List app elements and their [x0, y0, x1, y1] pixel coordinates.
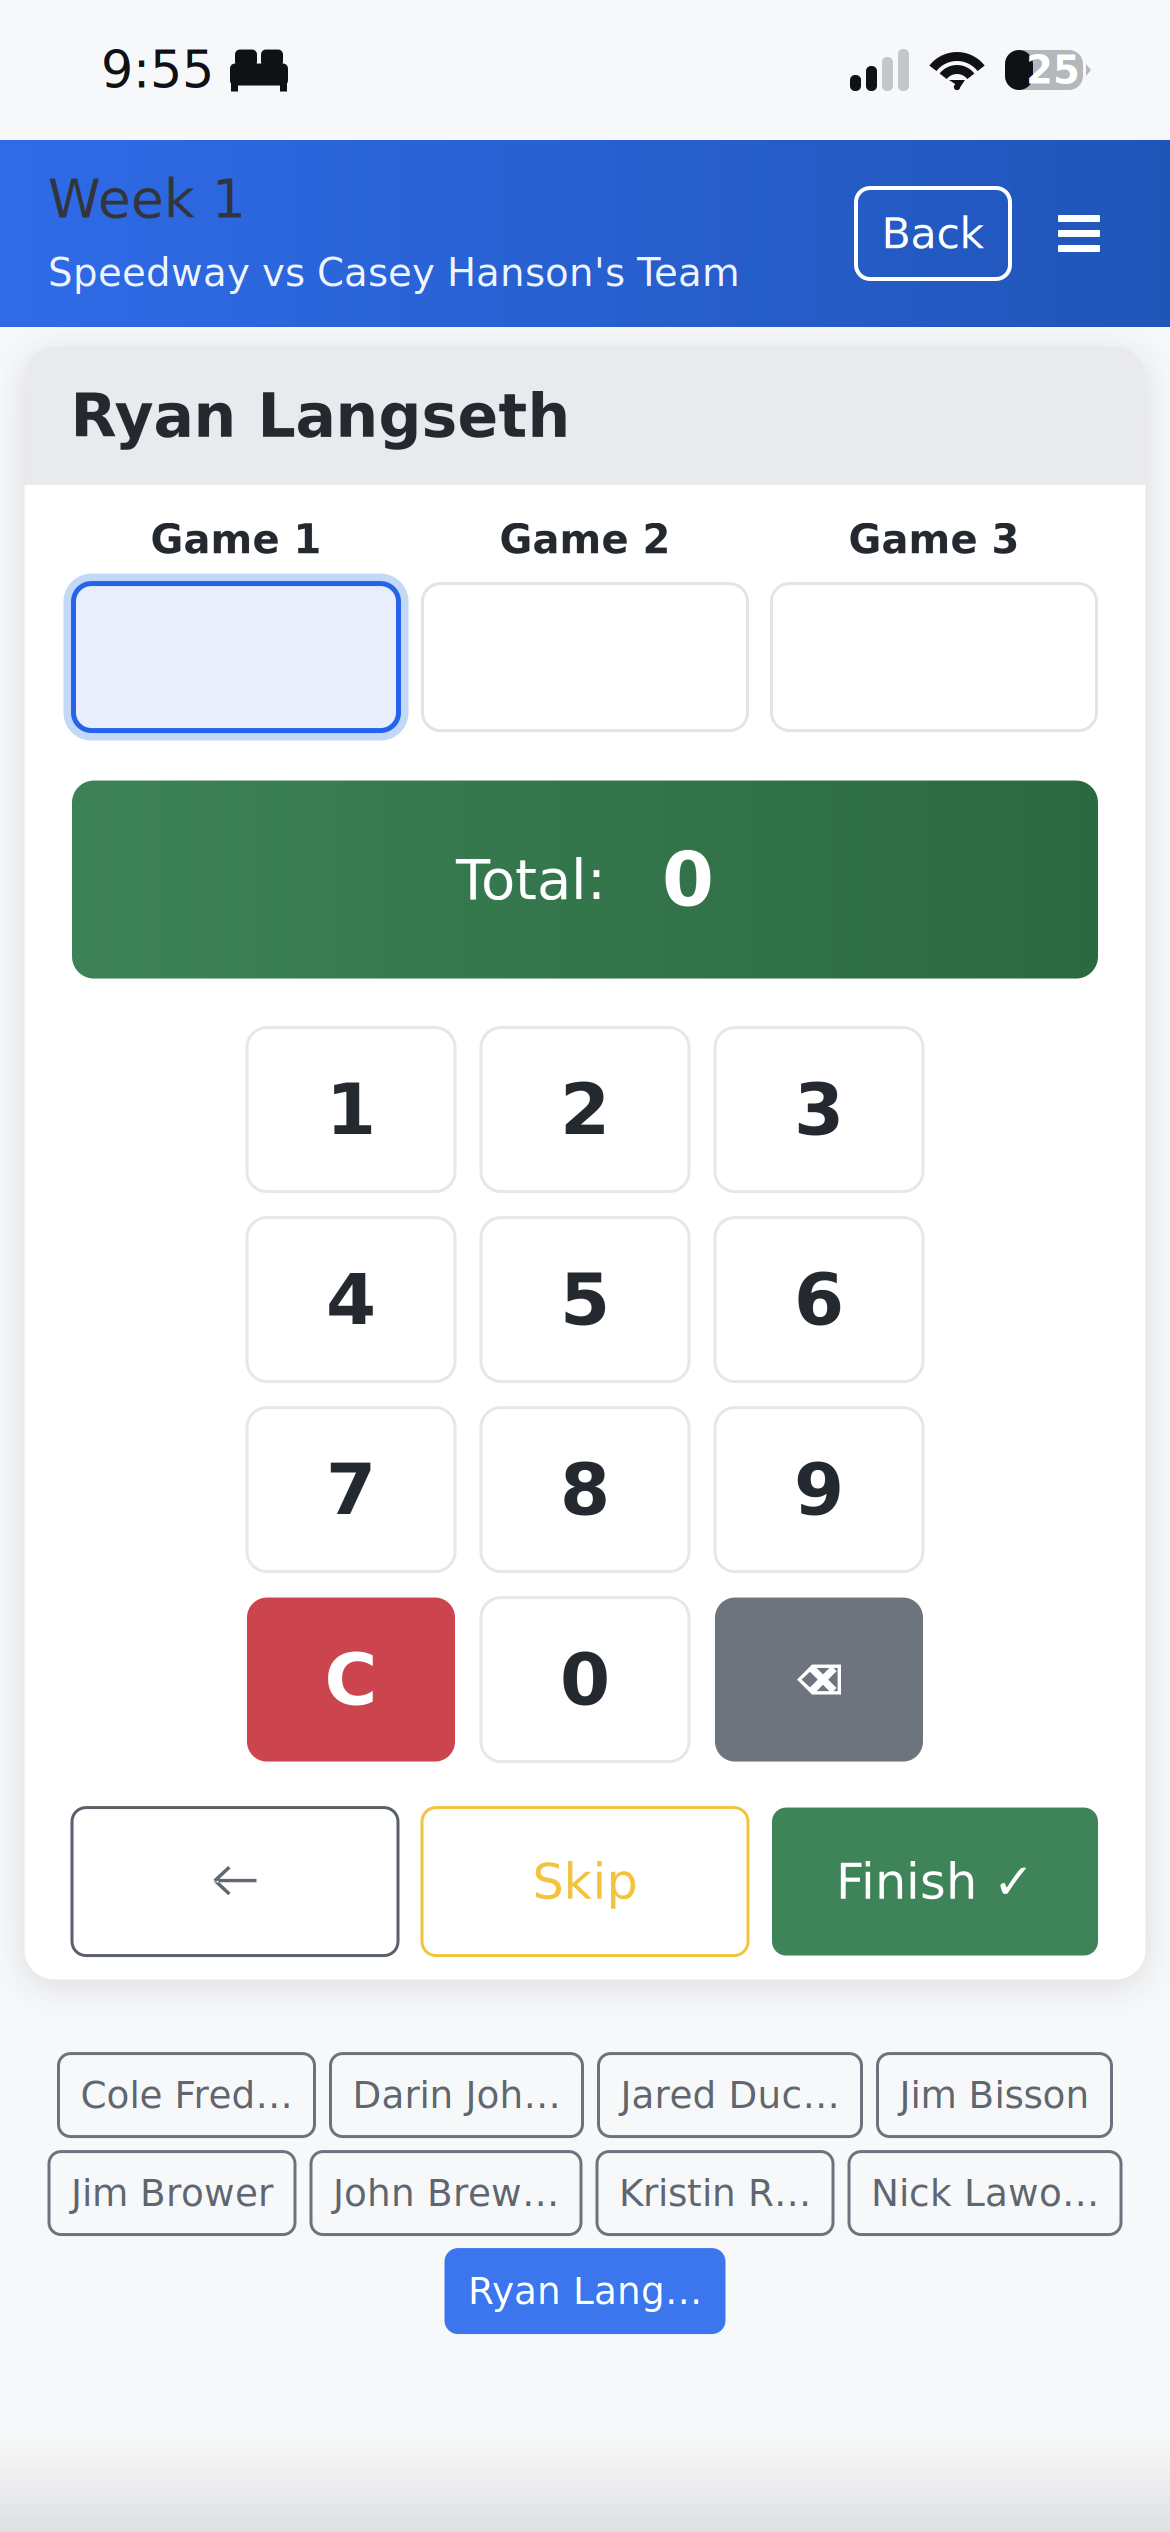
staticText: Kristin R… — [619, 2171, 811, 2215]
staticText: Nick Lawo… — [871, 2171, 1099, 2215]
staticText: 9 — [794, 1448, 844, 1531]
staticText: Cole Fred… — [80, 2073, 292, 2117]
button[interactable]: Finish ✓ — [772, 1808, 1098, 1956]
button[interactable]: Game 3 — [761, 574, 1106, 741]
button[interactable]: Menu — [1058, 188, 1100, 279]
button[interactable]: Skip — [422, 1808, 748, 1956]
button[interactable]: Kristin R… — [597, 2152, 833, 2235]
staticText: Game 1 — [150, 516, 321, 563]
staticText: Jared Duc… — [620, 2073, 839, 2117]
button[interactable]: Jim Bisson — [877, 2054, 1111, 2137]
button[interactable]: 2 — [481, 1028, 689, 1192]
staticText: Jim Bisson — [899, 2073, 1089, 2117]
button[interactable]: 5 — [481, 1218, 689, 1382]
button[interactable]: Jim Brower — [49, 2152, 295, 2235]
staticText: Back — [881, 209, 984, 258]
staticText: 4 — [326, 1258, 376, 1341]
button[interactable]: Previous player — [72, 1808, 398, 1956]
staticText: Week 1 — [48, 168, 246, 230]
button[interactable]: Ryan Lang… — [446, 2250, 724, 2333]
staticText: Game 2 — [499, 516, 670, 563]
staticText: 7 — [326, 1448, 376, 1531]
staticText: Game 3 — [848, 516, 1019, 563]
button[interactable]: 9 — [715, 1408, 923, 1572]
staticText: 0 — [662, 836, 714, 923]
staticText: 8 — [560, 1448, 610, 1531]
button[interactable]: 8 — [481, 1408, 689, 1572]
button[interactable]: Game 2 — [412, 574, 757, 741]
staticText: Ryan Langseth — [70, 381, 570, 451]
button[interactable]: Jared Duc… — [598, 2054, 861, 2137]
button[interactable]: 4 — [247, 1218, 455, 1382]
staticText: 9:55 — [101, 40, 214, 99]
button[interactable]: Cole Fred… — [58, 2054, 314, 2137]
button[interactable]: Delete — [715, 1598, 923, 1762]
staticText: Ryan Lang… — [468, 2269, 702, 2313]
staticText: Speedway vs Casey Hanson's Team — [48, 250, 740, 295]
button[interactable]: 1 — [247, 1028, 455, 1192]
staticText: Skip — [532, 1853, 637, 1910]
staticText: 5 — [560, 1258, 610, 1341]
staticText: John Brew… — [333, 2171, 559, 2215]
staticText: Darin Joh… — [352, 2073, 560, 2117]
staticText: Finish ✓ — [836, 1853, 1034, 1910]
button[interactable]: 3 — [715, 1028, 923, 1192]
button[interactable]: John Brew… — [311, 2152, 581, 2235]
button[interactable]: Back — [856, 188, 1010, 279]
staticText: Total: — [456, 847, 606, 912]
button[interactable]: 0 — [481, 1598, 689, 1762]
button[interactable]: 6 — [715, 1218, 923, 1382]
staticText: 2 — [560, 1068, 610, 1151]
button[interactable]: Darin Joh… — [330, 2054, 582, 2137]
button[interactable]: Game 1 — [63, 574, 408, 741]
button[interactable]: Nick Lawo… — [849, 2152, 1121, 2235]
staticText: 3 — [794, 1068, 844, 1151]
staticText: C — [324, 1638, 377, 1721]
staticText: 25 — [1026, 47, 1080, 92]
staticText: 6 — [794, 1258, 844, 1341]
button[interactable]: 7 — [247, 1408, 455, 1572]
staticText: 0 — [560, 1638, 610, 1721]
button[interactable]: C — [247, 1598, 455, 1762]
staticText: Jim Brower — [71, 2171, 273, 2215]
staticText: 1 — [326, 1068, 376, 1151]
